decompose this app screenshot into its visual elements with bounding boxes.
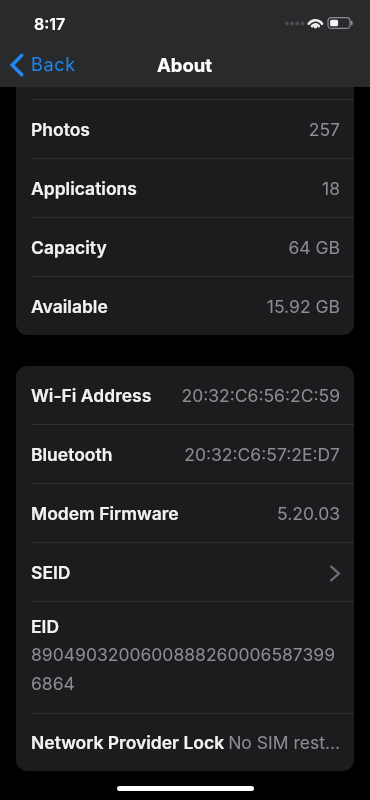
staticText: About xyxy=(157,54,213,76)
staticText: Bluetooth xyxy=(31,444,113,465)
staticText: Capacity xyxy=(31,237,107,258)
staticText: EID xyxy=(31,616,60,637)
staticText: 8:17 xyxy=(34,14,66,33)
button[interactable]: Available xyxy=(16,277,354,335)
staticText: 20:32:C6:56:2C:59 xyxy=(181,385,340,406)
staticText: SEID xyxy=(31,562,71,583)
staticText: Available xyxy=(31,296,108,317)
button[interactable]: SEID xyxy=(16,543,354,601)
staticText: Photos xyxy=(31,119,90,140)
staticText: 64 GB xyxy=(288,237,340,258)
button[interactable]: Modem Firmware xyxy=(16,484,354,542)
staticText: Network Provider Lock xyxy=(31,732,225,753)
staticText: 15.92 GB xyxy=(266,296,340,317)
button[interactable]: Capacity xyxy=(16,218,354,276)
button[interactable]: Photos xyxy=(16,100,354,158)
button[interactable]: Bluetooth xyxy=(16,425,354,483)
button[interactable]: Back xyxy=(0,48,84,82)
staticText: Modem Firmware xyxy=(31,503,179,524)
staticText: Applications xyxy=(31,178,137,199)
button[interactable]: Applications xyxy=(16,159,354,217)
staticText: 18 xyxy=(322,178,340,199)
staticText: No SIM restrictions xyxy=(228,732,340,753)
staticText: Back xyxy=(31,54,76,76)
staticText: 257 xyxy=(308,119,340,140)
staticText: 20:32:C6:57:2E:D7 xyxy=(184,444,340,465)
button[interactable]: EID xyxy=(16,602,354,713)
staticText: 5.20.03 xyxy=(277,503,340,524)
button[interactable]: Wi-Fi Address xyxy=(16,366,354,424)
staticText: Wi-Fi Address xyxy=(31,385,152,406)
button[interactable]: Network Provider Lock xyxy=(16,714,354,771)
staticText: 89049032006008882600065873996864 xyxy=(31,644,340,694)
